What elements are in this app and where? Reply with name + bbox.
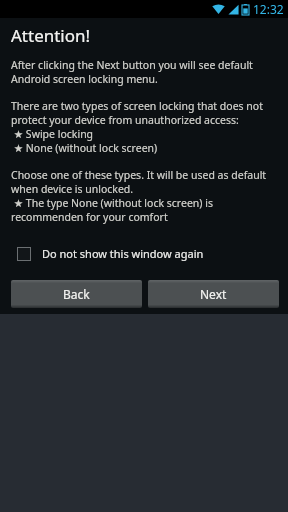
staticText: Choose one of these types. It will be us… [11, 168, 267, 224]
button[interactable]: Back [11, 280, 142, 308]
staticText: There are two types of screen locking th… [11, 99, 263, 155]
staticText: Attention! [11, 24, 91, 47]
staticText: Do not show this window again [42, 246, 204, 261]
button[interactable]: Next [148, 280, 279, 308]
staticText: Back [63, 286, 90, 302]
staticText: 12:32 [253, 1, 284, 17]
staticText: Next [200, 286, 227, 302]
staticText: After clicking the Next button you will … [11, 58, 253, 86]
button[interactable]: Do not show this window again [11, 244, 279, 263]
